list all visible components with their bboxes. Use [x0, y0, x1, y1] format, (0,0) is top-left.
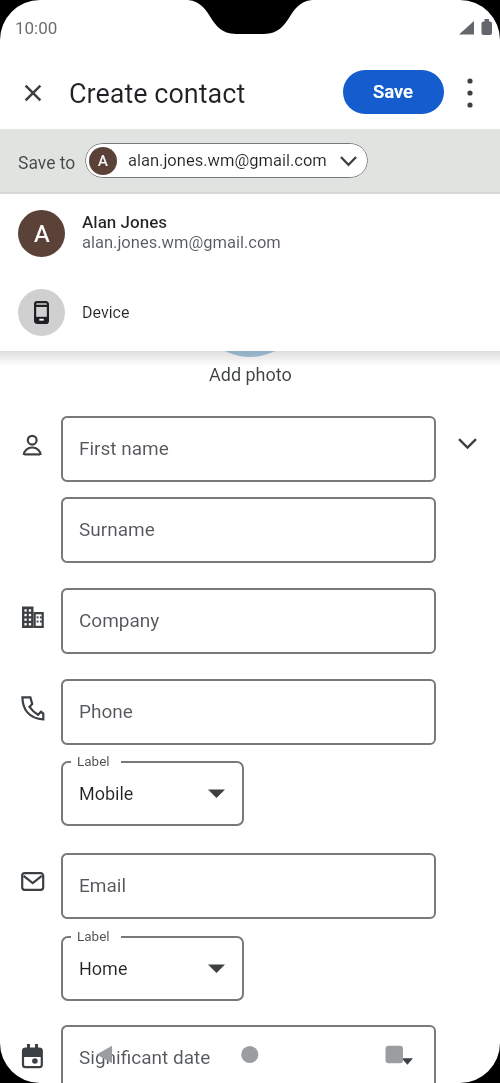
staticText: 10:00: [15, 18, 58, 38]
button[interactable]: [446, 69, 494, 117]
staticText: A: [98, 152, 108, 170]
staticText: Device: [82, 303, 130, 322]
button[interactable]: A: [0, 196, 500, 267]
staticText: Email: [79, 874, 127, 896]
button[interactable]: Label: [61, 761, 244, 826]
button[interactable]: Add photo: [175, 356, 325, 392]
staticText: Save to: [18, 153, 76, 174]
button[interactable]: A: [85, 143, 368, 178]
staticText: alan.jones.wm@gmail.com: [128, 151, 327, 170]
staticText: alan.jones.wm@gmail.com: [82, 233, 281, 252]
button[interactable]: Save: [343, 70, 444, 114]
staticText: Add photo: [209, 364, 292, 385]
button[interactable]: Company: [61, 588, 436, 654]
button[interactable]: Phone: [61, 679, 436, 745]
staticText: First name: [79, 437, 169, 459]
button[interactable]: Significant date: [61, 1025, 436, 1083]
staticText: Alan Jones: [82, 212, 168, 232]
staticText: Surname: [79, 518, 155, 540]
staticText: Mobile: [79, 783, 134, 804]
staticText: Label: [77, 753, 110, 769]
staticText: Home: [79, 958, 128, 979]
button[interactable]: First name: [61, 416, 436, 482]
staticText: Significant date: [79, 1046, 211, 1068]
staticText: Company: [79, 609, 160, 631]
staticText: Save: [373, 81, 414, 103]
button[interactable]: [9, 69, 57, 117]
staticText: Phone: [79, 700, 133, 722]
button[interactable]: Surname: [61, 497, 436, 563]
staticText: A: [34, 220, 50, 248]
button[interactable]: [443, 419, 491, 467]
button[interactable]: Email: [61, 853, 436, 919]
staticText: Create contact: [69, 78, 246, 110]
button[interactable]: Device: [0, 281, 500, 344]
staticText: Label: [77, 928, 110, 944]
button[interactable]: Label: [61, 936, 244, 1001]
